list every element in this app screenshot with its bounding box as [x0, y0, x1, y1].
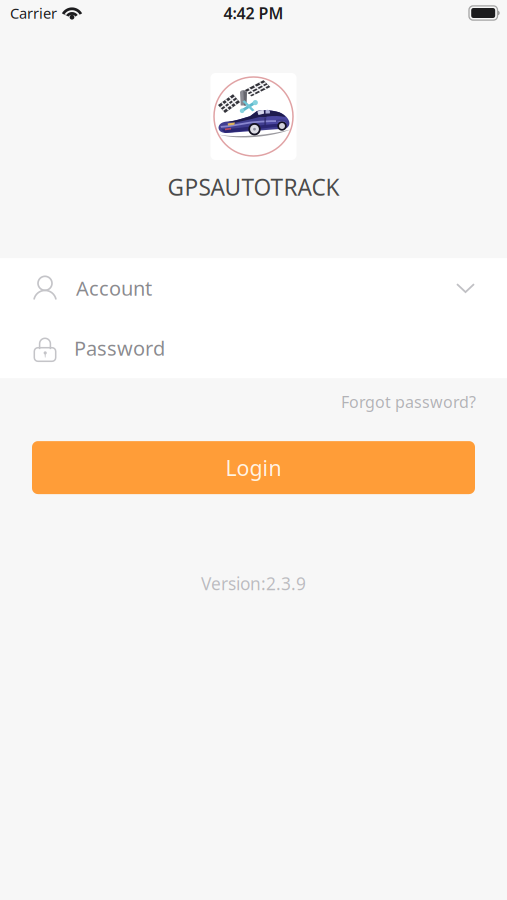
- staticText: Version:2.3.9: [201, 572, 306, 595]
- button[interactable]: Show saved accounts: [440, 258, 507, 318]
- button[interactable]: Login: [32, 441, 475, 494]
- staticText: Password: [74, 335, 165, 361]
- button[interactable]: Forgot password?: [341, 386, 507, 417]
- staticText: Forgot password?: [341, 391, 476, 412]
- staticText: GPSAUTOTRACK: [167, 172, 339, 202]
- staticText: 4:42 PM: [223, 2, 283, 24]
- button[interactable]: Account: [0, 258, 440, 318]
- staticText: Account: [76, 275, 152, 301]
- staticText: Carrier: [10, 3, 57, 23]
- button[interactable]: Password: [0, 318, 507, 378]
- staticText: Login: [225, 453, 281, 482]
